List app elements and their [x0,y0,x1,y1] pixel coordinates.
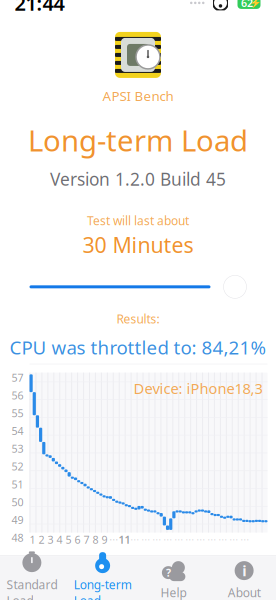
staticText: 53 [11,442,23,456]
button[interactable]: Long-term Load [67,547,138,600]
staticText: ··· [107,533,118,546]
staticText: 54 [11,424,23,438]
staticText: Test will last about [87,213,189,228]
staticText: 21:44 [14,0,64,16]
staticText: Results: [116,311,159,327]
staticText: Standard Load [6,577,57,600]
staticText: ··· ··· ··· ··· ··· ··· ··· ··· ··· ··· … [130,533,249,546]
staticText: Help [160,585,186,600]
staticText: 62 [241,0,253,10]
staticText: 50 [11,495,23,509]
staticText: 48 [11,530,23,545]
staticText: 57 [11,370,23,385]
staticText: ? [166,565,171,580]
staticText: 52 [11,459,23,474]
staticText: i [242,561,246,580]
staticText: About [228,585,261,600]
staticText: Version 1.2.0 Build 45 [50,168,226,191]
button[interactable]: i [209,555,276,600]
staticText: 51 [11,477,23,491]
staticText: ⚡ [250,0,262,8]
staticText: Device: iPhone18,3 [133,379,262,398]
staticText: 30 Minutes [82,230,193,259]
staticText: Long-term Load [74,577,132,600]
staticText: 49 [11,513,23,527]
staticText: CPU was throttled to: 84,21% [9,335,266,360]
staticText: Long-term Load [28,121,248,160]
button[interactable]: ? [138,555,209,600]
staticText: 1 2 3 4 5 6 7 8 9 [29,532,107,547]
staticText: 55 [11,406,23,420]
staticText: 11 [118,532,130,547]
staticText: 56 [11,388,23,402]
staticText: APSI Bench [102,87,173,105]
button[interactable]: Standard Load [0,547,67,600]
